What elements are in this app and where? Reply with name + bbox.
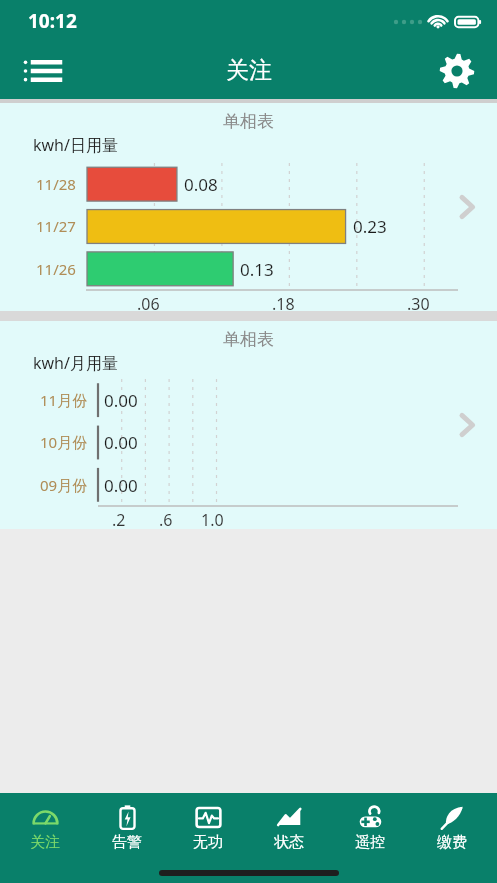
button[interactable]: More: [447, 187, 487, 227]
staticText: 0.13: [240, 258, 274, 281]
staticText: 遥控: [355, 833, 385, 852]
staticText: 0.23: [353, 215, 387, 238]
staticText: 0.00: [104, 474, 138, 497]
button[interactable]: 告警: [91, 793, 163, 863]
staticText: .30: [407, 293, 430, 315]
staticText: .2: [112, 509, 126, 531]
staticText: kwh/日用量: [33, 134, 118, 156]
staticText: 0.00: [104, 389, 138, 412]
staticText: 11/26: [36, 259, 76, 279]
button[interactable]: 遥控: [334, 793, 406, 863]
staticText: 关注: [30, 833, 60, 852]
staticText: 状态: [274, 833, 304, 852]
button[interactable]: Menu: [16, 45, 68, 97]
button[interactable]: 单相表: [0, 321, 497, 529]
staticText: 单相表: [223, 329, 274, 350]
button[interactable]: 无功: [172, 793, 244, 863]
staticText: 11月份: [40, 390, 88, 410]
staticText: 11/28: [36, 174, 76, 194]
staticText: 11/27: [36, 216, 76, 236]
staticText: 缴费: [437, 833, 467, 852]
staticText: .06: [137, 293, 160, 315]
staticText: 关注: [226, 56, 272, 85]
button[interactable]: 单相表: [0, 103, 497, 311]
staticText: kwh/月用量: [33, 352, 118, 374]
staticText: 0.00: [104, 431, 138, 454]
staticText: 10月份: [40, 432, 88, 452]
button[interactable]: 关注: [9, 793, 81, 863]
button[interactable]: Settings: [431, 45, 483, 97]
staticText: 0.08: [184, 173, 218, 196]
button[interactable]: 缴费: [416, 793, 488, 863]
button[interactable]: 状态: [253, 793, 325, 863]
staticText: .18: [272, 293, 295, 315]
staticText: 告警: [112, 833, 142, 852]
staticText: 单相表: [223, 111, 274, 132]
staticText: 10:12: [28, 8, 77, 34]
staticText: 1.0: [201, 509, 224, 531]
staticText: 09月份: [40, 475, 88, 495]
staticText: .6: [159, 509, 173, 531]
staticText: 无功: [193, 833, 223, 852]
button[interactable]: More: [447, 405, 487, 445]
